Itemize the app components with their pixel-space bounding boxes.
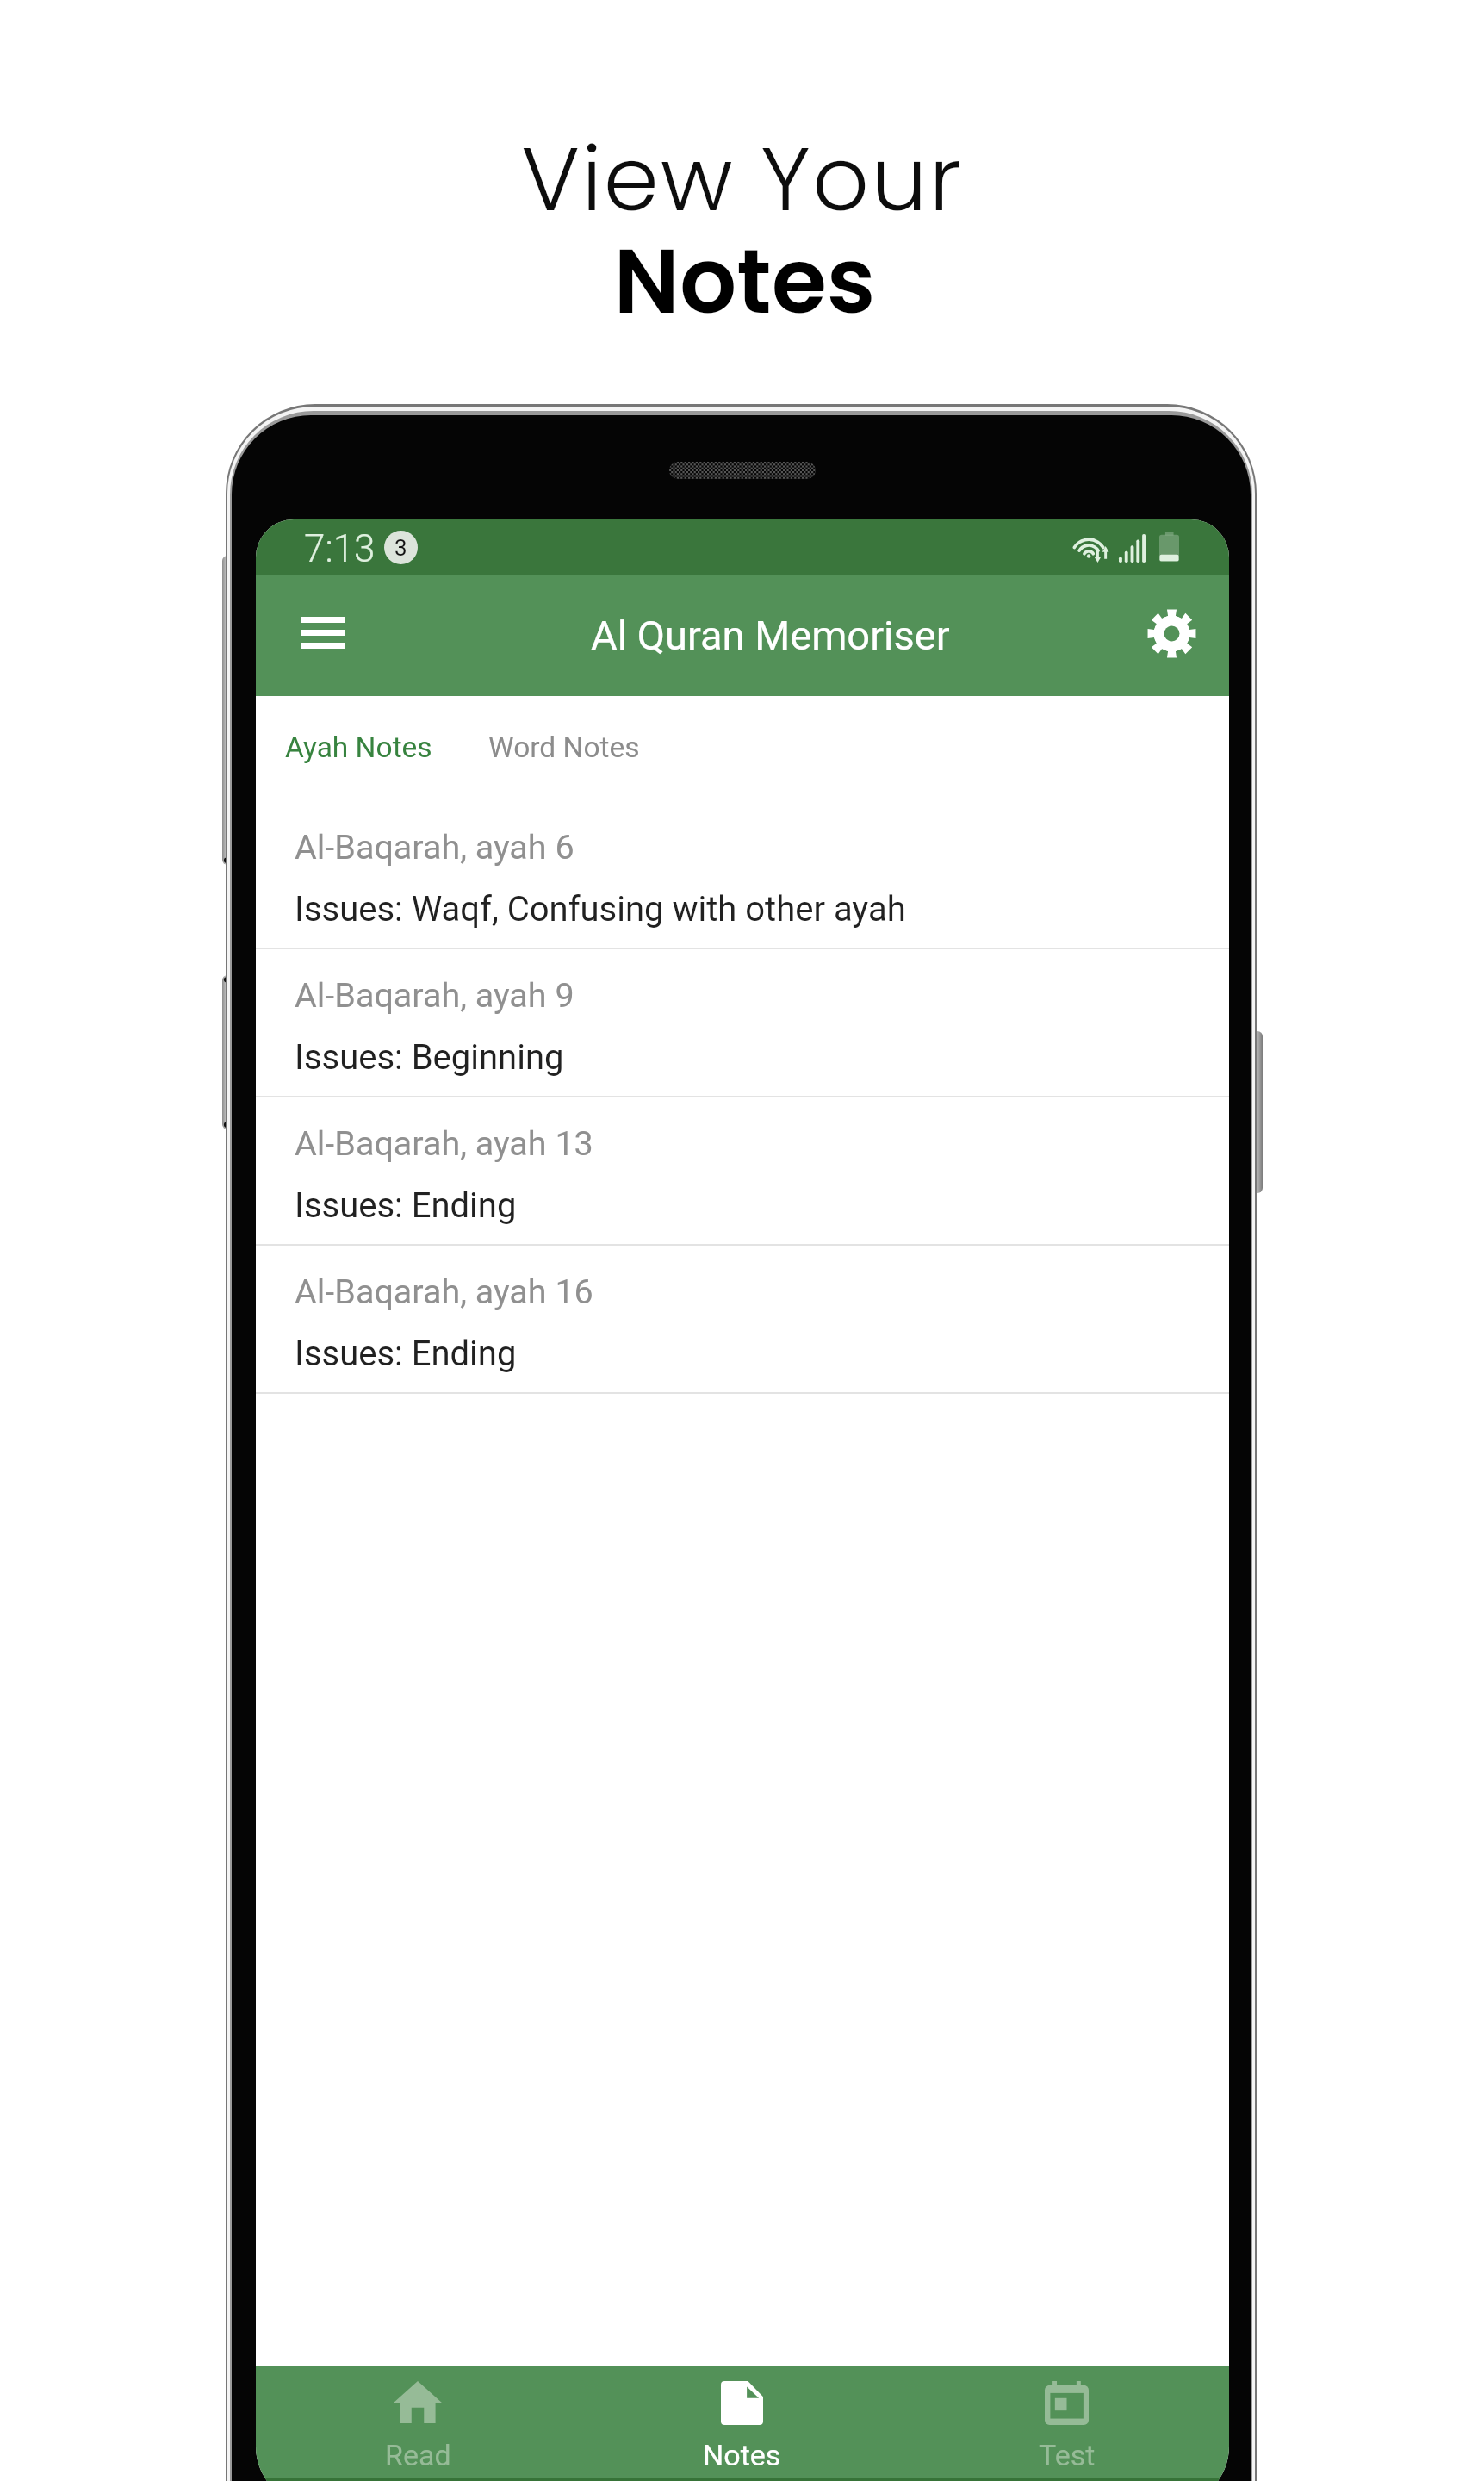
button[interactable]: Al-Baqarah, ayah 13 [256, 1097, 1229, 1246]
button[interactable]: Al-Baqarah, ayah 6 [256, 801, 1229, 949]
button[interactable]: Word Notes [476, 720, 652, 774]
staticText: Issues: Ending [295, 1185, 517, 1226]
staticText: Al-Baqarah, ayah 6 [295, 827, 574, 867]
staticText: Al-Baqarah, ayah 9 [295, 975, 574, 1015]
staticText: 3 [394, 535, 407, 561]
staticText: Read [385, 2438, 451, 2472]
button[interactable]: Al-Baqarah, ayah 9 [256, 949, 1229, 1097]
button[interactable]: Read [256, 2366, 580, 2478]
staticText: View Your [0, 117, 1484, 241]
button[interactable]: Settings [1128, 590, 1214, 676]
staticText: Issues: Ending [295, 1334, 517, 1374]
button[interactable]: Test [904, 2366, 1229, 2478]
staticText: Notes [703, 2438, 781, 2472]
staticText: Al Quran Memoriser [591, 612, 950, 659]
staticText: 7:13 [304, 526, 376, 571]
staticText: Word Notes [488, 731, 640, 764]
staticText: Notes [3, 219, 1484, 345]
staticText: Test [1039, 2438, 1096, 2472]
staticText: Ayah Notes [285, 731, 432, 764]
staticText: Al-Baqarah, ayah 16 [295, 1272, 593, 1311]
staticText: Issues: Beginning [295, 1037, 564, 1078]
button[interactable]: Al-Baqarah, ayah 16 [256, 1246, 1229, 1394]
button[interactable]: Open navigation drawer [280, 589, 366, 675]
staticText: Al-Baqarah, ayah 13 [295, 1123, 593, 1163]
button[interactable]: Notes [580, 2366, 904, 2478]
staticText: Issues: Waqf, Confusing with other ayah [295, 889, 906, 930]
button[interactable]: Ayah Notes [273, 720, 444, 774]
